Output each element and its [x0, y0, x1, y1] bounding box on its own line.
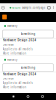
staticText: Applies to all models [3, 81, 33, 85]
staticText: More information [3, 85, 27, 89]
staticText: Something [20, 32, 35, 36]
button[interactable]: Tabs [48, 6, 50, 9]
staticText: Applies to all models [3, 47, 33, 51]
staticText: Something [20, 66, 35, 69]
staticText: secure [12, 6, 21, 9]
button[interactable]: Something [2, 30, 53, 38]
staticText: Overview [3, 43, 14, 46]
button[interactable]: Something [2, 64, 53, 72]
button[interactable]: Menu [52, 6, 55, 9]
staticText: example.com/page [22, 6, 46, 9]
staticText: Hardware Design 2024 [3, 72, 37, 76]
staticText: Overview [3, 77, 14, 80]
staticText: Hardware Design 2024 [3, 39, 37, 42]
staticText: More information [3, 52, 27, 55]
staticText: Warranty [7, 24, 17, 28]
button[interactable]: Home [27, 95, 29, 98]
button[interactable]: Page info [1, 6, 5, 9]
staticText: Warranty [7, 58, 17, 61]
